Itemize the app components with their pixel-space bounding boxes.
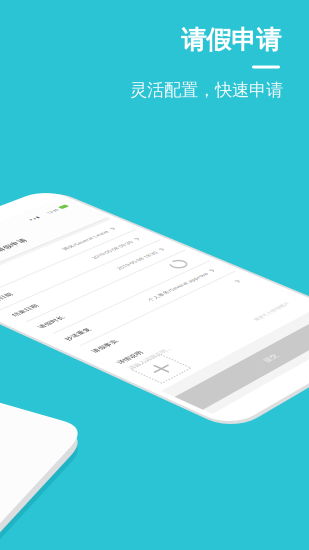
button[interactable]: 开始日期: [0, 0, 309, 550]
staticText: 最多可上传9张图片: [304, 341, 309, 353]
button[interactable]: 请假时长: [0, 0, 309, 550]
staticText: 请假时长: [34, 328, 82, 343]
staticText: 请输入详细说明...: [125, 368, 211, 382]
staticText: 调休/Several Leave: [125, 275, 219, 289]
button[interactable]: 提交: [0, 0, 309, 550]
button[interactable]: 请假类型: [0, 0, 309, 550]
staticText: 灵活配置，快速申请: [130, 79, 283, 101]
staticText: 提交: [274, 368, 300, 385]
staticText: 详情说明: [113, 364, 161, 379]
button[interactable]: 结束日期: [0, 0, 309, 550]
staticText: 请假事实: [88, 353, 136, 367]
staticText: 个人事务/Several approva: [194, 321, 309, 335]
staticText: 结束日期: [8, 317, 56, 331]
staticText: 抄送重复: [61, 341, 109, 355]
staticText: 开始日期: [0, 305, 30, 320]
staticText: 2019-05-08 09:30: [160, 286, 244, 301]
button[interactable]: 请假事实: [0, 0, 309, 550]
staticText: 请假申请: [6, 258, 66, 276]
staticText: 请假类型: [0, 293, 5, 308]
button[interactable]: 抄送重复: [0, 0, 309, 550]
staticText: 请假申请: [181, 24, 281, 55]
